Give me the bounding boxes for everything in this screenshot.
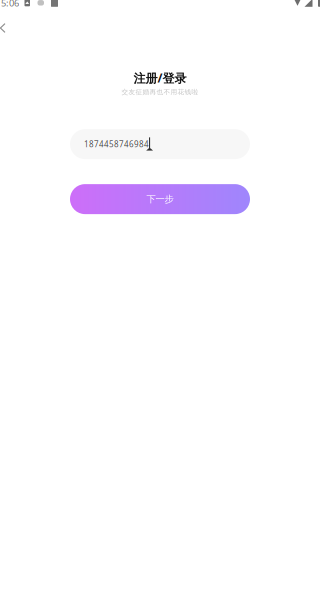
staticText: 5:06 bbox=[1, 0, 19, 9]
staticText: 注册/登录 bbox=[133, 70, 186, 86]
staticText: 交友征婚再也不用花钱啦 bbox=[121, 88, 198, 96]
staticText: 1874458746984 bbox=[84, 139, 149, 149]
button[interactable]: 1874458746984 bbox=[70, 129, 250, 159]
button[interactable]: 下一步 bbox=[70, 184, 250, 214]
button[interactable]: Back bbox=[0, 7, 20, 35]
staticText: 下一步 bbox=[146, 193, 173, 205]
